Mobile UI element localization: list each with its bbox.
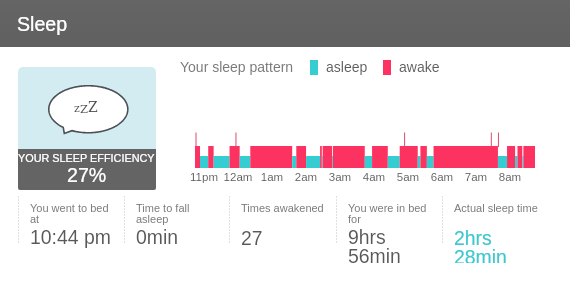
button[interactable]: You were in bed for	[336, 196, 427, 256]
staticText: 27	[241, 227, 263, 249]
button[interactable]: Sleep	[0, 0, 570, 47]
staticText: 2hrs 28min	[454, 227, 507, 263]
staticText: 7am	[459, 171, 493, 184]
staticText: Time to fall asleep	[136, 202, 190, 225]
staticText: Z	[88, 99, 98, 115]
button[interactable]: Times awakened	[229, 196, 324, 256]
staticText: z	[74, 102, 80, 115]
staticText: 10:44 pm	[30, 226, 111, 248]
staticText: 27%	[67, 164, 107, 186]
staticText: You went to bed at	[30, 202, 109, 225]
button[interactable]: Actual sleep time	[442, 196, 538, 256]
button[interactable]: z	[18, 67, 156, 190]
staticText: 11pm	[187, 171, 221, 184]
staticText: Times awakened	[241, 202, 324, 226]
staticText: YOUR SLEEP EFFICIENCY	[18, 152, 155, 164]
staticText: 1am	[255, 171, 289, 184]
button[interactable]: You went to bed at	[18, 196, 111, 256]
staticText: awake	[399, 59, 440, 75]
staticText: 0min	[136, 226, 179, 248]
staticText: Z	[80, 102, 88, 115]
staticText: 2am	[289, 171, 323, 184]
staticText: 4am	[357, 171, 391, 184]
staticText: 3am	[323, 171, 357, 184]
staticText: Sleep	[17, 13, 68, 35]
button[interactable]: Time to fall asleep	[124, 196, 190, 256]
staticText: asleep	[326, 59, 368, 75]
staticText: 5am	[391, 171, 425, 184]
staticText: Your sleep pattern	[180, 59, 294, 75]
staticText: You were in bed for	[348, 202, 427, 225]
staticText: Actual sleep time	[454, 202, 538, 226]
staticText: 9hrs 56min	[348, 226, 401, 263]
staticText: 8am	[493, 171, 527, 184]
staticText: 12am	[221, 171, 255, 184]
staticText: 6am	[425, 171, 459, 184]
